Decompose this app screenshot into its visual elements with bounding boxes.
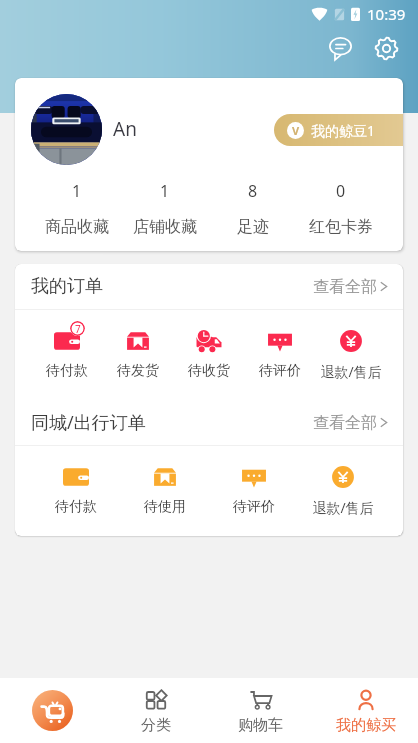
staticText: 足迹 — [237, 217, 269, 237]
button[interactable]: 1 — [121, 180, 209, 237]
staticText: 分类 — [141, 716, 171, 735]
button[interactable]: 分类 — [104, 678, 208, 743]
staticText: 待收货 — [188, 362, 230, 380]
button[interactable]: 购物车 — [208, 678, 313, 743]
staticText: 商品收藏 — [45, 217, 109, 237]
staticText: 待发货 — [117, 362, 159, 380]
staticText: 退款/售后 — [312, 498, 374, 517]
button[interactable]: 待评价 — [209, 464, 298, 516]
staticText: 1 — [72, 180, 82, 202]
staticText: 红包卡券 — [309, 217, 373, 237]
staticText: 退款/售后 — [320, 362, 382, 381]
staticText: 0 — [336, 180, 346, 202]
button[interactable]: V — [274, 114, 403, 146]
button[interactable]: Profile photo — [31, 94, 102, 165]
button[interactable]: 1 — [33, 180, 121, 237]
staticText: 待付款 — [46, 362, 88, 380]
staticText: 8 — [248, 180, 258, 202]
staticText: 购物车 — [238, 716, 283, 735]
staticText: 1 — [160, 180, 170, 202]
button[interactable]: 待发货 — [102, 328, 173, 380]
staticText: 待付款 — [55, 498, 97, 516]
button[interactable]: Settings — [368, 30, 404, 66]
button[interactable]: 待收货 — [173, 328, 244, 380]
staticText: An — [113, 116, 137, 142]
staticText: 待使用 — [144, 498, 186, 516]
staticText: 查看全部 — [313, 413, 377, 433]
staticText: 待评价 — [233, 498, 275, 516]
staticText: 同城/出行订单 — [31, 410, 146, 435]
staticText: 7 — [75, 322, 81, 336]
button[interactable]: 待使用 — [120, 464, 209, 516]
staticText: V — [292, 123, 300, 138]
button[interactable]: 同城/出行订单 — [31, 400, 388, 445]
staticText: 10:39 — [367, 4, 406, 24]
staticText: 我的鲸豆1 — [311, 121, 376, 140]
staticText: 我的订单 — [31, 275, 103, 298]
button[interactable]: Home — [0, 678, 104, 743]
button[interactable]: 待评价 — [244, 328, 315, 380]
staticText: 我的鲸买 — [336, 716, 396, 735]
staticText: 店铺收藏 — [133, 217, 197, 237]
button[interactable]: 退款/售后 — [298, 464, 387, 517]
staticText: 查看全部 — [313, 277, 377, 297]
button[interactable]: Messages — [322, 30, 358, 66]
button[interactable]: 我的订单 — [31, 264, 388, 309]
button[interactable]: 0 — [297, 180, 385, 237]
button[interactable]: 退款/售后 — [315, 328, 386, 381]
button[interactable]: 我的鲸买 — [313, 678, 418, 743]
staticText: 待评价 — [259, 362, 301, 380]
button[interactable]: 7 — [32, 328, 102, 380]
button[interactable]: 8 — [209, 180, 297, 237]
button[interactable]: 待付款 — [31, 464, 120, 516]
